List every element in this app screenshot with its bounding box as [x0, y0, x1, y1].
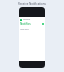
staticText: Notifics [20, 22, 31, 26]
staticText: Receive Notifications [18, 2, 46, 6]
button[interactable]: Notifics [20, 22, 44, 30]
staticText: Settings [23, 18, 31, 21]
staticText: Allow alerts [20, 28, 29, 30]
